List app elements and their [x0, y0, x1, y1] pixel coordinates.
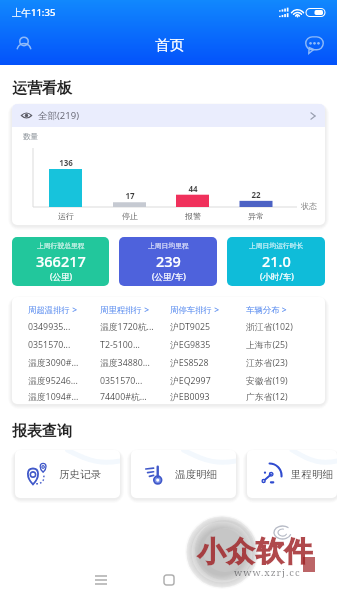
- staticText: 沪ES8528: [170, 357, 209, 369]
- staticText: 温度3090#...: [28, 357, 79, 369]
- staticText: 21.0: [262, 251, 291, 271]
- staticText: 温度1720杭...: [100, 321, 154, 333]
- staticText: 历史记录: [59, 468, 101, 481]
- staticText: 239: [156, 251, 181, 271]
- staticText: 44: [188, 183, 198, 194]
- button[interactable]: 周超温排行 >: [28, 304, 100, 404]
- staticText: 136: [59, 157, 73, 168]
- button[interactable]: Messages: [292, 24, 337, 65]
- staticText: 沪EG9835: [170, 339, 211, 351]
- button[interactable]: Home: [151, 568, 187, 592]
- button[interactable]: 历史记录: [15, 450, 120, 498]
- staticText: 报表查询: [12, 422, 72, 441]
- staticText: 366217: [36, 251, 86, 271]
- staticText: 0351570...: [28, 339, 71, 351]
- staticText: 广东省(12): [246, 391, 288, 403]
- staticText: 沪EB0093: [170, 391, 210, 403]
- button[interactable]: 温度明细: [131, 450, 236, 498]
- button[interactable]: Recents: [83, 568, 119, 592]
- button[interactable]: 全部(219): [12, 104, 325, 127]
- staticText: 全部(219): [38, 109, 80, 122]
- button[interactable]: 上周日均运行时长: [227, 237, 325, 286]
- staticText: 上周行驶总里程: [37, 241, 85, 250]
- staticText: 0349935...: [28, 321, 71, 333]
- button[interactable]: 周里程排行 >: [100, 304, 170, 404]
- staticText: 上海市(25): [246, 339, 288, 351]
- staticText: 停止: [122, 211, 138, 221]
- staticText: 上周日均里程: [148, 241, 189, 250]
- staticText: 运营看板: [12, 79, 72, 98]
- staticText: 周停车排行 >: [170, 304, 219, 315]
- staticText: 0351570...: [100, 375, 143, 387]
- staticText: 沪EQ2997: [170, 375, 211, 387]
- button[interactable]: 上周行驶总里程: [12, 237, 109, 286]
- staticText: 上周日均运行时长: [249, 241, 304, 250]
- staticText: 车辆分布 >: [246, 304, 287, 315]
- staticText: 温度1094#...: [28, 391, 79, 403]
- staticText: 首页: [155, 36, 184, 54]
- button[interactable]: Profile: [0, 24, 48, 65]
- button[interactable]: 上周日均里程: [119, 237, 217, 286]
- staticText: 温度34880...: [100, 357, 150, 369]
- staticText: 浙江省(102): [246, 321, 293, 333]
- staticText: 江苏省(23): [246, 357, 288, 369]
- staticText: 状态: [301, 201, 317, 211]
- staticText: 17: [125, 190, 135, 201]
- staticText: www.xzrj.cc: [234, 566, 301, 579]
- staticText: T2-5100...: [100, 339, 140, 351]
- staticText: 运行: [58, 211, 74, 221]
- staticText: 报警: [185, 211, 201, 221]
- button[interactable]: 车辆分布 >: [246, 304, 325, 404]
- staticText: 沪DT9025: [170, 321, 210, 333]
- staticText: 里程明细: [291, 468, 333, 481]
- staticText: 数量: [23, 132, 38, 141]
- staticText: 安徽省(19): [246, 375, 288, 387]
- staticText: 温度95246...: [28, 375, 78, 387]
- button[interactable]: 里程明细: [247, 450, 337, 498]
- staticText: (公里): [50, 271, 73, 283]
- staticText: 周超温排行 >: [28, 304, 77, 315]
- staticText: 小众软件: [197, 534, 313, 569]
- staticText: 上午11:35: [12, 6, 56, 19]
- staticText: 温度明细: [175, 468, 217, 481]
- staticText: (小时/车): [260, 271, 294, 283]
- staticText: (公里/车): [152, 271, 186, 283]
- staticText: 22: [251, 189, 261, 200]
- staticText: 74400#杭...: [100, 391, 147, 403]
- staticText: 周里程排行 >: [100, 304, 149, 315]
- button[interactable]: 周停车排行 >: [170, 304, 246, 404]
- staticText: 异常: [248, 211, 264, 221]
